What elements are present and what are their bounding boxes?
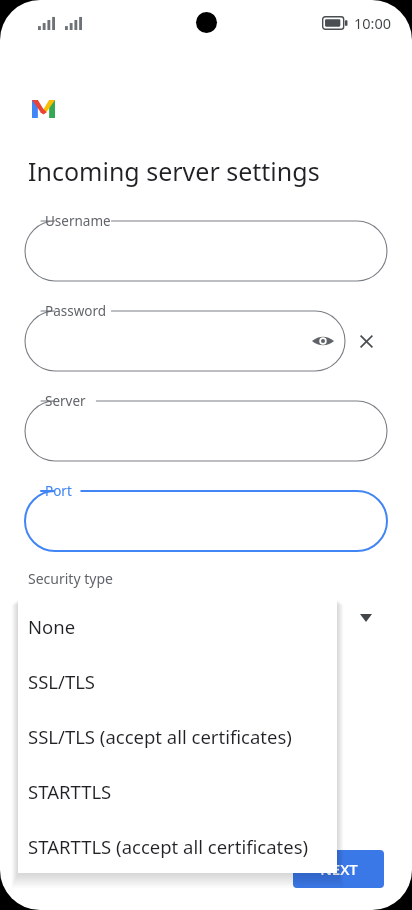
button[interactable]: Show password	[301, 319, 345, 363]
staticText: STARTTLS (accept all certificates)	[28, 834, 309, 859]
staticText: SSL/TLS (accept all certificates)	[28, 724, 292, 749]
staticText: NEXT	[320, 859, 358, 879]
staticText: Port	[45, 482, 72, 500]
staticText: 10:00	[354, 13, 392, 33]
button[interactable]: Open security type dropdown	[352, 604, 380, 632]
button[interactable]: None	[18, 599, 337, 654]
staticText: Incoming server settings	[28, 154, 320, 188]
staticText: Server	[45, 392, 86, 410]
button[interactable]: SSL/TLS (accept all certificates)	[18, 709, 337, 764]
button[interactable]: STARTTLS	[18, 764, 337, 819]
staticText: STARTTLS	[28, 779, 112, 804]
button[interactable]: Clear password	[345, 320, 387, 362]
button[interactable]: Password	[25, 302, 345, 371]
button[interactable]: Server	[25, 392, 387, 461]
button[interactable]: Username	[25, 212, 387, 281]
staticText: Username	[45, 212, 111, 230]
button[interactable]: Port	[25, 482, 387, 551]
button[interactable]: SSL/TLS	[18, 654, 337, 709]
staticText: SSL/TLS	[28, 669, 96, 694]
button[interactable]: NEXT	[293, 850, 384, 888]
staticText: Password	[45, 302, 107, 320]
staticText: None	[28, 614, 76, 639]
staticText: Security type	[28, 569, 113, 588]
button[interactable]: STARTTLS (accept all certificates)	[18, 819, 337, 873]
